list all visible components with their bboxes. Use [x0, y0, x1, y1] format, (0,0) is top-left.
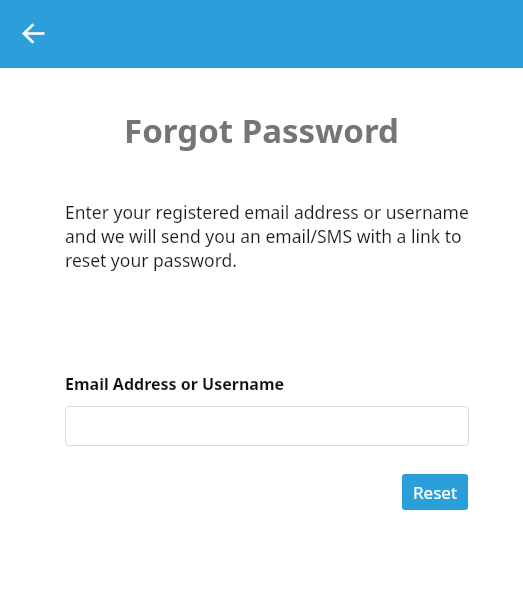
button[interactable]: Reset — [402, 474, 468, 510]
button[interactable]: Back — [10, 9, 58, 57]
button[interactable] — [65, 406, 469, 446]
staticText: Enter your registered email address or u… — [65, 200, 471, 272]
staticText: Email Address or Username — [65, 373, 285, 395]
staticText: Forgot Password — [0, 108, 523, 153]
staticText: Reset — [413, 481, 458, 504]
